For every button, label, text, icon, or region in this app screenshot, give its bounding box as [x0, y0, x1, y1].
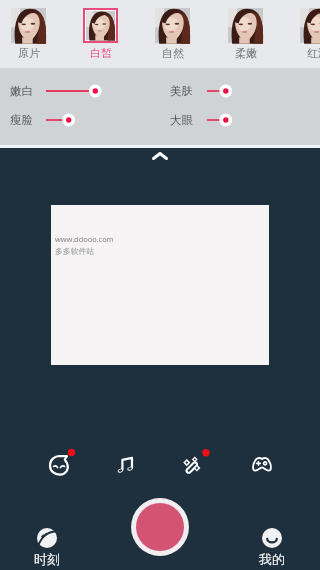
staticText: 大眼	[170, 113, 193, 127]
button[interactable]: 时刻	[12, 528, 82, 570]
staticText: 时刻	[34, 551, 60, 567]
staticText: 我的	[259, 551, 285, 567]
button[interactable]: 瘦脸	[10, 111, 33, 129]
button[interactable]: 柔嫩	[216, 8, 275, 60]
button[interactable]: 嫩白	[44, 82, 103, 100]
staticText: 自然	[162, 46, 184, 60]
button[interactable]: Effects	[171, 443, 215, 487]
button[interactable]: 白皙	[71, 8, 130, 60]
button[interactable]: 大眼	[205, 111, 234, 129]
button[interactable]: Shutter	[131, 498, 189, 556]
staticText: 红润	[307, 46, 320, 60]
staticText: 原片	[18, 46, 40, 60]
button[interactable]: 红润	[288, 8, 320, 60]
button[interactable]: Collapse panel	[140, 147, 180, 165]
staticText: 美肤	[170, 84, 193, 98]
button[interactable]: Games	[240, 442, 284, 486]
button[interactable]: 美肤	[170, 82, 193, 100]
button[interactable]: 美肤	[205, 82, 234, 100]
button[interactable]: 大眼	[170, 111, 193, 129]
button[interactable]: Music	[104, 443, 148, 487]
button[interactable]: 原片	[0, 8, 58, 60]
staticText: 嫩白	[10, 84, 33, 98]
staticText: 多多软件站	[55, 246, 94, 256]
staticText: 柔嫩	[235, 46, 257, 60]
staticText: www.ddooo.com	[55, 234, 114, 244]
staticText: 瘦脸	[10, 113, 33, 127]
button[interactable]: 嫩白	[10, 82, 33, 100]
staticText: 白皙	[90, 46, 112, 60]
button[interactable]: 瘦脸	[44, 111, 77, 129]
button[interactable]: 我的	[237, 528, 307, 570]
button[interactable]: 自然	[143, 8, 202, 60]
button[interactable]: Stickers	[37, 443, 81, 487]
